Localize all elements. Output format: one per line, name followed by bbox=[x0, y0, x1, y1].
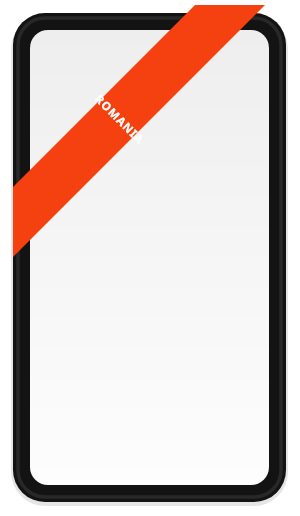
button[interactable]: Romania phone preview bbox=[0, 0, 300, 516]
